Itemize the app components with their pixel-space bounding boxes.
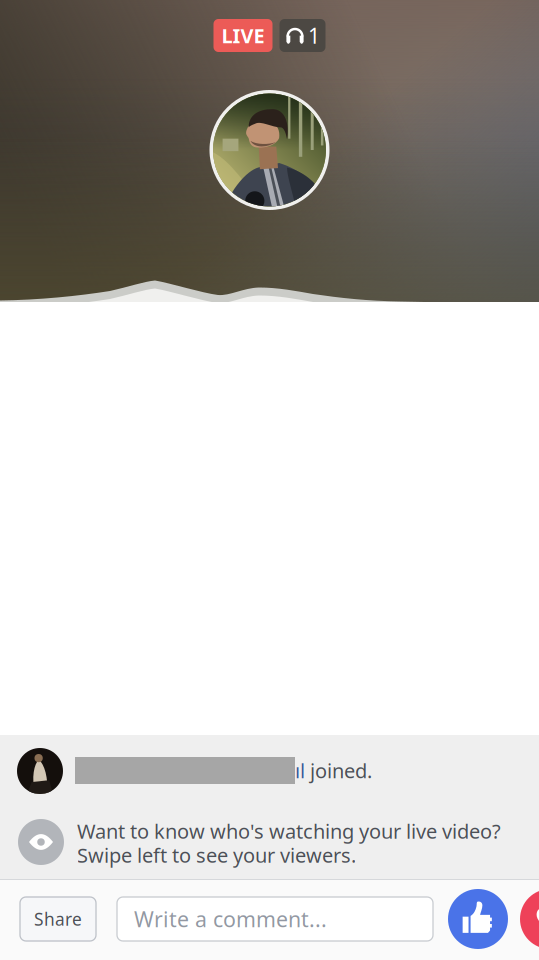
button[interactable]: Share [20,897,96,941]
staticText: Swipe left to see your viewers. [77,842,356,868]
button[interactable]: Write a comment... [117,897,433,941]
staticText: Want to know who's watching your live vi… [77,818,501,844]
staticText: Write a comment... [134,905,327,933]
button[interactable]: LIVE [213,19,272,52]
button[interactable]: Listeners [279,19,325,52]
button[interactable]: Like [448,889,508,949]
staticText: ıl [295,757,305,784]
staticText: 1 [308,21,320,50]
staticText: joined. [305,757,372,784]
button[interactable]: Love [520,889,539,949]
staticText: Share [34,907,82,930]
staticText: LIVE [221,22,264,49]
